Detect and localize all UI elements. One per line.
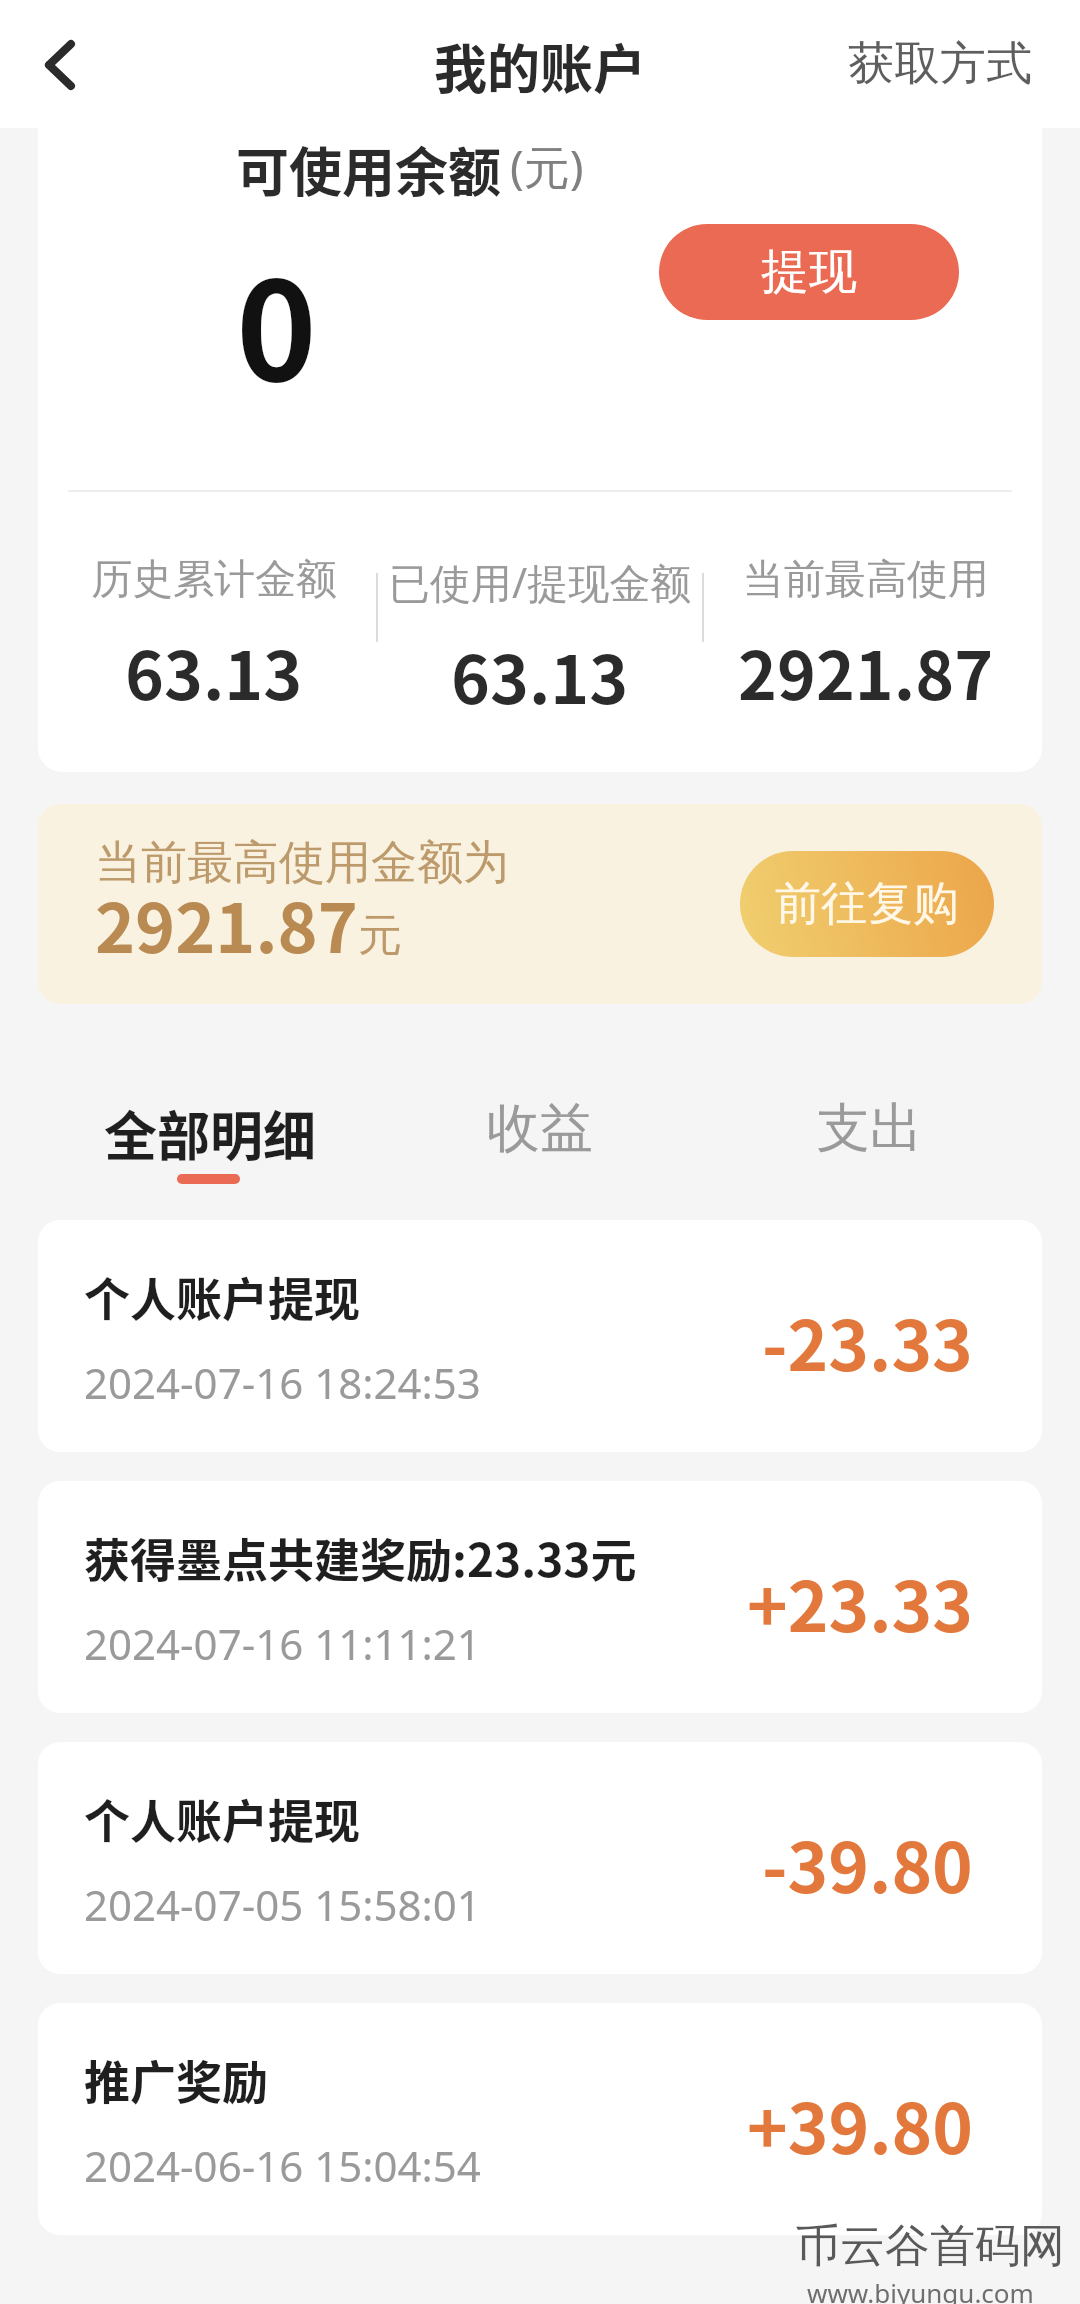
staticText: 提现 bbox=[761, 242, 857, 302]
button[interactable]: 提现 bbox=[659, 224, 959, 320]
staticText: 获取方式 bbox=[848, 35, 1032, 93]
staticText: 2024-07-16 18:24:53 bbox=[84, 1354, 481, 1411]
staticText: 63.13 bbox=[125, 623, 303, 719]
staticText: 支出 bbox=[817, 1095, 923, 1162]
staticText: 可使用余额 bbox=[236, 131, 501, 208]
staticText: 我的账户 bbox=[434, 28, 646, 105]
staticText: 币云谷首码网 bbox=[795, 2218, 1065, 2275]
staticText: 推广奖励 bbox=[84, 2046, 268, 2113]
staticText: 个人账户提现 bbox=[84, 1785, 360, 1852]
staticText: 收益 bbox=[487, 1095, 593, 1162]
staticText: 当前最高使用金额为 bbox=[95, 834, 509, 892]
staticText: 已使用/提现金额 bbox=[389, 554, 692, 610]
staticText: +23.33 bbox=[747, 1552, 973, 1652]
staticText: 2921.87 bbox=[738, 623, 994, 719]
button[interactable]: 个人账户提现 bbox=[38, 1742, 1042, 1974]
staticText: (元) bbox=[510, 135, 584, 198]
button[interactable]: 获取方式 bbox=[797, 5, 1080, 123]
staticText: 2024-07-16 11:11:21 bbox=[84, 1615, 481, 1672]
staticText: 63.13 bbox=[451, 627, 629, 723]
staticText: www.biyungu.com bbox=[807, 2275, 1034, 2304]
button[interactable]: 获得墨点共建奖励:23.33元 bbox=[38, 1481, 1042, 1713]
staticText: 历史累计金额 bbox=[91, 554, 337, 606]
button[interactable]: 全部明细 bbox=[45, 1060, 375, 1220]
staticText: 元 bbox=[358, 908, 402, 963]
staticText: 0 bbox=[236, 222, 317, 420]
staticText: 2024-07-05 15:58:01 bbox=[84, 1876, 481, 1933]
staticText: 获得墨点共建奖励:23.33元 bbox=[84, 1524, 637, 1591]
button[interactable]: 推广奖励 bbox=[38, 2003, 1042, 2235]
staticText: 全部明细 bbox=[104, 1095, 316, 1172]
button[interactable]: 个人账户提现 bbox=[38, 1220, 1042, 1452]
staticText: 2921.87 bbox=[95, 874, 358, 972]
staticText: +39.80 bbox=[747, 2074, 973, 2174]
button[interactable]: 支出 bbox=[705, 1060, 1035, 1220]
button[interactable]: Back bbox=[10, 15, 110, 115]
staticText: -23.33 bbox=[762, 1291, 973, 1391]
button[interactable]: 前往复购 bbox=[740, 851, 994, 957]
staticText: 2024-06-16 15:04:54 bbox=[84, 2137, 481, 2194]
staticText: 当前最高使用 bbox=[743, 554, 989, 606]
staticText: 个人账户提现 bbox=[84, 1263, 360, 1330]
staticText: 前往复购 bbox=[775, 875, 959, 933]
button[interactable]: 收益 bbox=[375, 1060, 705, 1220]
staticText: -39.80 bbox=[762, 1813, 973, 1913]
